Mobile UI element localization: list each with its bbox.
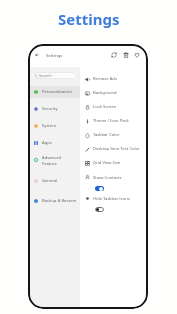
button[interactable]: Favorite	[132, 50, 141, 59]
button[interactable]: Backup & Restore	[30, 195, 80, 207]
button[interactable]: Restore	[109, 50, 118, 59]
button[interactable]: System	[30, 120, 80, 132]
button[interactable]: Theme / Icon Pack	[80, 115, 147, 127]
staticText: Settings	[58, 9, 120, 29]
button[interactable]: Personalization	[30, 86, 80, 98]
button[interactable]: Hide Taskbar Icons	[80, 193, 147, 213]
staticText: Show Contacts	[93, 175, 122, 181]
staticText: Backup & Restore	[42, 198, 77, 204]
staticText: Advanced Feature	[42, 155, 62, 166]
button[interactable]: Search	[31, 72, 77, 79]
button[interactable]: Security	[30, 103, 80, 115]
staticText: System	[42, 123, 57, 129]
button[interactable]: Lock Screen	[80, 101, 147, 113]
button[interactable]: Remove Ads	[80, 73, 147, 85]
staticText: Personalization	[42, 89, 72, 95]
staticText: Settings	[46, 52, 63, 58]
button[interactable]: Apps	[30, 137, 80, 149]
staticText: Hide Taskbar Icons	[93, 196, 130, 202]
button[interactable]: General	[30, 175, 80, 187]
staticText: General	[42, 178, 58, 184]
button[interactable]: Delete	[121, 50, 130, 59]
staticText: Remove Ads	[93, 76, 117, 82]
staticText: Apps	[42, 140, 52, 146]
staticText: Lock Screen	[93, 104, 117, 110]
button[interactable]: Advanced Feature	[30, 152, 80, 168]
staticText: Grid View Size	[93, 160, 121, 166]
staticText: Security	[42, 106, 58, 112]
button[interactable]: Background	[80, 87, 147, 99]
staticText: Background	[93, 90, 117, 96]
button[interactable]: Back	[32, 50, 41, 59]
staticText: Taskbar Color	[93, 132, 120, 138]
staticText: Search	[39, 73, 52, 78]
staticText: Desktop Item Text Color	[93, 146, 140, 152]
button[interactable]: Show Contacts	[80, 172, 147, 192]
button[interactable]: Taskbar Color	[80, 129, 147, 141]
staticText: Theme / Icon Pack	[93, 118, 129, 124]
button[interactable]: Grid View Size	[80, 157, 147, 169]
button[interactable]: Desktop Item Text Color	[80, 143, 147, 155]
